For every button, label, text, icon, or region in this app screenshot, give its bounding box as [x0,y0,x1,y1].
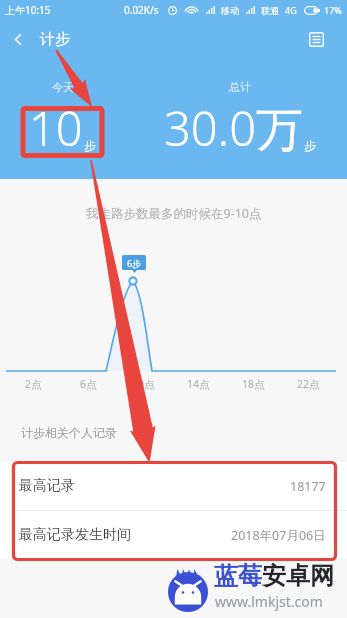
staticText: 6点 [80,377,97,391]
staticText: 最高记录发生时间 [19,526,131,544]
staticText: 10 [29,96,83,160]
staticText: 蓝莓 [214,561,262,591]
staticText: 4G [285,4,297,16]
staticText: 18177 [290,478,326,495]
staticText: 30.0万 [164,96,303,160]
button[interactable]: 最高记录 [0,462,347,510]
staticText: 14点 [187,377,210,391]
staticText: 0.02K/s [124,3,159,17]
staticText: 安卓网 [262,561,334,591]
staticText: 移动 [221,5,239,16]
staticText: 2018年07月06日 [231,527,326,544]
staticText: 计步相关个人记录 [21,425,117,440]
staticText: 今天 [52,80,74,94]
staticText: 10点 [132,377,155,391]
button[interactable]: 最高记录发生时间 [0,511,347,559]
staticText: 22点 [297,377,320,391]
button[interactable]: Records list [296,21,336,57]
staticText: 上午10:15 [5,3,51,17]
staticText: 步 [304,138,316,153]
staticText: 计步 [40,30,70,49]
staticText: 6步 [127,257,142,269]
staticText: 最高记录 [19,477,75,495]
staticText: 联通 [261,5,279,16]
button[interactable]: Back [0,21,36,57]
staticText: 步 [84,138,96,153]
staticText: 我走路步数最多的时候在9-10点 [86,205,262,222]
staticText: www.lmkjst.com [215,592,323,611]
staticText: 18点 [242,377,265,391]
staticText: 2点 [25,377,42,391]
staticText: 17% [324,4,342,16]
staticText: 总计 [229,80,251,94]
